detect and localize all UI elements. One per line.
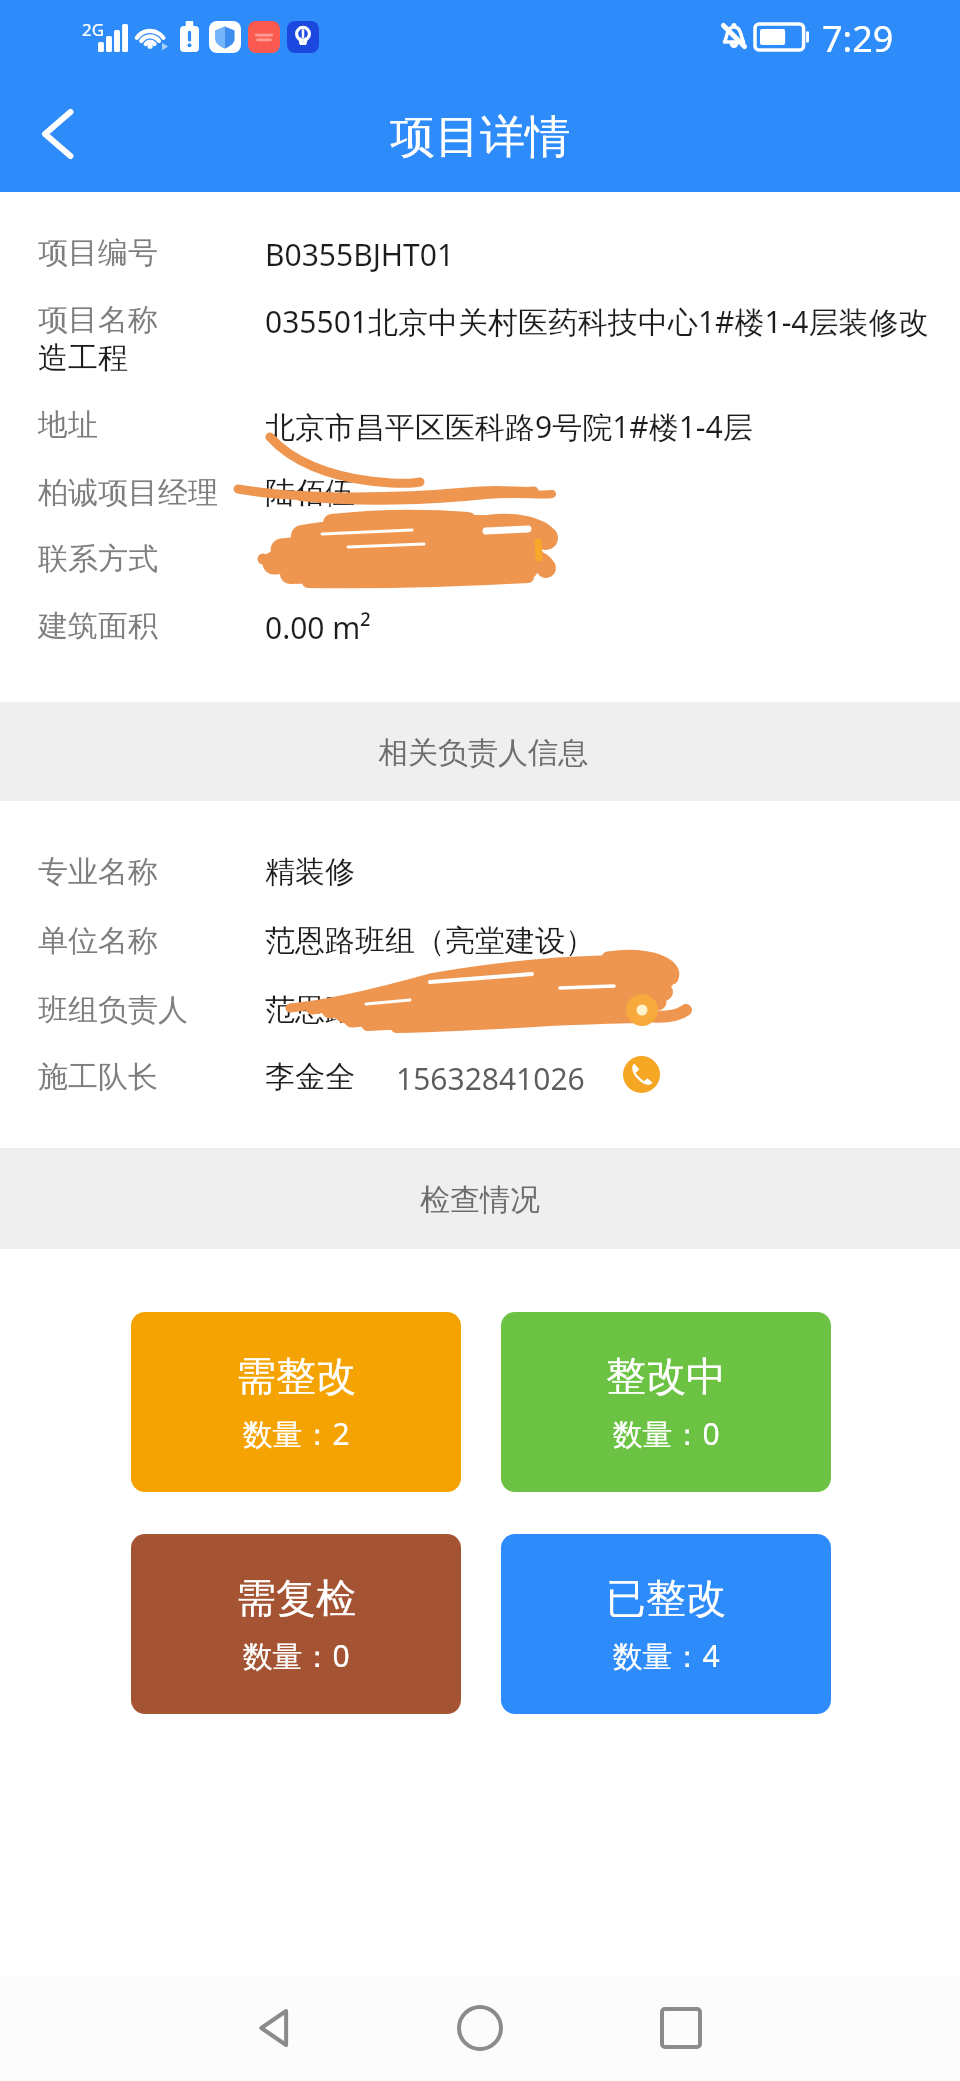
staticText: 单位名称 — [38, 922, 158, 960]
staticText: 施工队长 — [38, 1058, 158, 1096]
staticText: 联系方式 — [38, 540, 158, 578]
staticText: 数量：0 — [612, 1413, 720, 1454]
staticText: 项目详情 — [390, 109, 570, 166]
button[interactable]: 已整改 — [501, 1534, 831, 1714]
button[interactable]: Home — [425, 1975, 535, 2081]
staticText: 范恩路班组（亮堂建设） — [265, 922, 595, 960]
staticText: 035501北京中关村医药科技中心1#楼1-4层装修改 — [265, 301, 929, 342]
staticText: 范恩路 — [265, 991, 355, 1029]
button[interactable]: Back — [221, 1975, 331, 2081]
button[interactable]: Call — [623, 1056, 660, 1093]
staticText: 项目编号 — [38, 234, 158, 272]
staticText: 数量：4 — [612, 1635, 720, 1676]
staticText: 造工程 — [38, 339, 128, 377]
staticText: 建筑面积 — [38, 607, 158, 645]
staticText: 0.00 m² — [265, 607, 371, 648]
staticText: 柏诚项目经理 — [38, 474, 218, 512]
button[interactable]: Recents — [626, 1975, 736, 2081]
staticText: 北京市昌平区医科路9号院1#楼1-4层 — [265, 406, 753, 447]
staticText: 13800000000 — [396, 991, 585, 1032]
staticText: 需整改 — [236, 1351, 356, 1401]
staticText: 相关负责人信息 — [378, 734, 588, 772]
button[interactable]: 需整改 — [131, 1312, 461, 1492]
button[interactable]: 整改中 — [501, 1312, 831, 1492]
staticText: 李金全 — [265, 1058, 355, 1096]
staticText: 13700000000 — [265, 540, 454, 581]
staticText: 地址 — [38, 406, 98, 444]
staticText: 需复检 — [236, 1573, 356, 1623]
staticText: 整改中 — [606, 1351, 726, 1401]
staticText: 精装修 — [265, 853, 355, 891]
staticText: 专业名称 — [38, 853, 158, 891]
staticText: 已整改 — [606, 1573, 726, 1623]
staticText: 2G — [82, 18, 105, 41]
staticText: 检查情况 — [420, 1181, 540, 1219]
button[interactable]: 需复检 — [131, 1534, 461, 1714]
staticText: 数量：0 — [242, 1635, 350, 1676]
staticText: 陆佰伍 — [265, 474, 355, 512]
staticText: B0355BJHT01 — [265, 234, 455, 275]
staticText: 15632841026 — [396, 1058, 585, 1099]
staticText: 数量：2 — [242, 1413, 350, 1454]
staticText: 7:29 — [822, 14, 894, 63]
staticText: 班组负责人 — [38, 991, 188, 1029]
staticText: 项目名称 — [38, 301, 158, 339]
button[interactable]: Back — [0, 88, 112, 192]
